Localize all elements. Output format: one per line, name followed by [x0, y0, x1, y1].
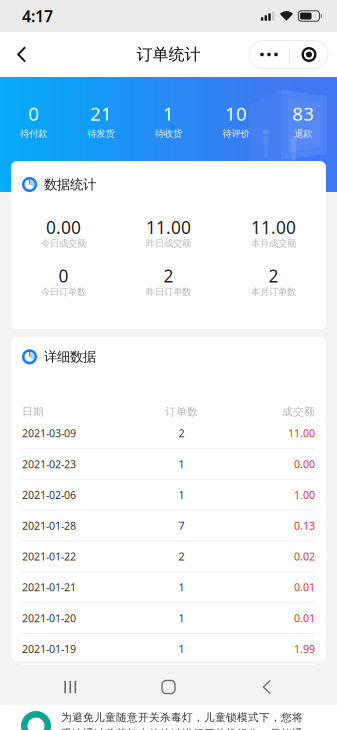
- staticText: 11.00: [146, 216, 191, 239]
- staticText: 4:17: [22, 5, 53, 27]
- button[interactable]: 为避免儿童随意开关杀毒灯，儿童锁模式下，您将: [0, 705, 337, 730]
- staticText: 待收货: [155, 128, 182, 139]
- staticText: 2: [178, 426, 184, 440]
- button[interactable]: Recent apps: [42, 671, 98, 703]
- staticText: 待发货: [88, 128, 115, 139]
- staticText: 1: [178, 642, 184, 656]
- staticText: 11.00: [288, 426, 315, 440]
- staticText: 2: [163, 264, 173, 287]
- staticText: 2021-01-20: [22, 611, 76, 625]
- staticText: 2021-01-21: [22, 580, 76, 594]
- button[interactable]: 21: [67, 101, 135, 139]
- staticText: 待评价: [222, 128, 249, 139]
- staticText: 订单数: [165, 405, 198, 418]
- button[interactable]: 83: [270, 101, 337, 139]
- staticText: 成交额: [282, 405, 315, 418]
- staticText: 0: [58, 264, 68, 287]
- staticText: 本月成交额: [251, 238, 296, 249]
- staticText: 为避免儿童随意开关杀毒灯，儿童锁模式下，您将: [61, 711, 303, 724]
- staticText: 10: [225, 101, 247, 126]
- staticText: 手法通过杀菌灯上的按键进行开关机操作，只能通: [61, 727, 303, 730]
- staticText: 0.01: [294, 611, 315, 625]
- staticText: 0.00: [46, 216, 81, 239]
- staticText: 1.99: [294, 642, 315, 656]
- staticText: 待付款: [20, 128, 47, 139]
- staticText: 0.00: [294, 457, 315, 471]
- staticText: 详细数据: [44, 349, 96, 365]
- staticText: 2021-01-28: [22, 518, 76, 533]
- button[interactable]: 10: [202, 101, 270, 139]
- button[interactable]: 0: [0, 101, 67, 139]
- staticText: 数据统计: [44, 176, 96, 193]
- staticText: 1: [178, 611, 184, 625]
- staticText: 日期: [22, 405, 44, 418]
- staticText: 2021-03-09: [22, 426, 76, 440]
- staticText: 0.02: [294, 549, 315, 563]
- button[interactable]: Home: [140, 671, 196, 703]
- staticText: 今日成交额: [41, 238, 86, 249]
- staticText: 7: [178, 518, 184, 533]
- staticText: 0.13: [294, 518, 315, 533]
- staticText: 1: [178, 580, 184, 594]
- staticText: 退款: [294, 128, 312, 139]
- staticText: 昨日订单数: [146, 286, 191, 298]
- button[interactable]: Back: [239, 671, 295, 703]
- staticText: 0: [28, 101, 39, 126]
- staticText: 2: [178, 549, 184, 563]
- staticText: 83: [292, 101, 314, 126]
- staticText: 本月订单数: [251, 286, 296, 298]
- staticText: 21: [90, 101, 112, 126]
- staticText: 1.00: [294, 488, 315, 502]
- button[interactable]: Back: [0, 32, 44, 77]
- staticText: 2021-01-22: [22, 549, 76, 563]
- staticText: 1: [178, 457, 184, 471]
- staticText: 订单统计: [136, 45, 200, 64]
- button[interactable]: More options: [249, 40, 337, 68]
- staticText: 2021-02-06: [22, 488, 76, 502]
- staticText: 1: [163, 101, 174, 126]
- button[interactable]: 1: [135, 101, 202, 139]
- staticText: 2021-02-23: [22, 457, 76, 471]
- staticText: 1: [178, 488, 184, 502]
- staticText: 0.01: [294, 580, 315, 594]
- staticText: 11.00: [251, 216, 296, 239]
- staticText: 2021-01-19: [22, 642, 76, 656]
- staticText: 2: [268, 264, 278, 287]
- staticText: 今日订单数: [41, 286, 86, 298]
- staticText: 昨日成交额: [146, 238, 191, 249]
